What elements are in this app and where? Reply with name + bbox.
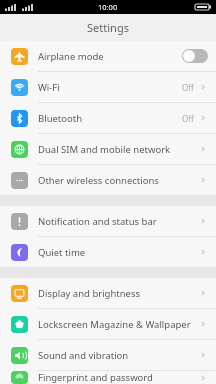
staticText: Wi-Fi — [38, 81, 182, 94]
button[interactable]: Quiet time — [0, 237, 216, 268]
staticText: Off — [182, 82, 194, 93]
staticText: Sound and vibration — [38, 349, 198, 362]
button[interactable]: Dual SIM and mobile network — [0, 134, 216, 165]
button[interactable]: Fingerprint and password — [0, 371, 216, 384]
staticText: Settings — [87, 20, 129, 35]
button[interactable]: Lockscreen Magazine & Wallpaper — [0, 309, 216, 340]
staticText: Airplane mode — [38, 50, 182, 63]
other: Airplane mode toggle — [182, 49, 208, 63]
staticText: Dual SIM and mobile network — [38, 143, 198, 156]
staticText: Notification and status bar — [38, 215, 198, 228]
staticText: Display and brightness — [38, 287, 198, 300]
staticText: 10:00 — [98, 2, 118, 12]
button[interactable]: Bluetooth — [0, 103, 216, 134]
button[interactable]: Display and brightness — [0, 278, 216, 309]
button[interactable]: Other wireless connections — [0, 165, 216, 196]
button[interactable]: Notification and status bar — [0, 206, 216, 237]
button[interactable]: Wi-Fi — [0, 72, 216, 103]
staticText: Other wireless connections — [38, 174, 198, 187]
button[interactable]: Airplane mode — [0, 41, 216, 72]
staticText: Fingerprint and password — [38, 371, 198, 384]
staticText: Lockscreen Magazine & Wallpaper — [38, 318, 198, 331]
button[interactable]: Sound and vibration — [0, 340, 216, 371]
staticText: Off — [182, 113, 194, 124]
staticText: Quiet time — [38, 246, 198, 259]
staticText: Bluetooth — [38, 112, 182, 125]
